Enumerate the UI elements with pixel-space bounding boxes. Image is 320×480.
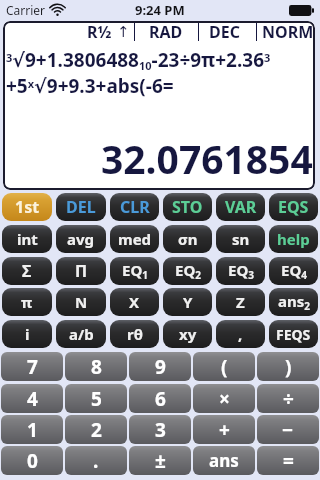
button[interactable]: N — [56, 288, 106, 316]
button[interactable]: 3 — [129, 415, 191, 444]
button[interactable]: xy — [163, 320, 212, 348]
staticText: 9:24 PM — [135, 1, 185, 19]
staticText: Y — [183, 292, 193, 312]
staticText: EQS — [278, 196, 309, 218]
button[interactable]: ± — [129, 446, 191, 475]
staticText: 8 — [91, 354, 102, 380]
staticText: DEL — [66, 196, 96, 218]
button[interactable]: 9 — [129, 352, 191, 381]
button[interactable]: ans2 — [269, 288, 318, 316]
button[interactable]: ans — [193, 446, 255, 475]
staticText: Σ — [22, 260, 32, 282]
staticText: 9 — [155, 354, 166, 380]
staticText: DEC — [209, 21, 240, 41]
staticText: 32.0761854 — [101, 132, 313, 185]
button[interactable]: ( — [193, 352, 255, 381]
staticText: EQ2 — [175, 260, 201, 282]
button[interactable]: × — [193, 384, 255, 413]
staticText: VAR — [225, 196, 257, 218]
button[interactable]: CLR — [110, 193, 159, 221]
button[interactable]: 2 — [65, 415, 127, 444]
button[interactable]: STO — [163, 193, 212, 221]
staticText: ± — [155, 448, 166, 474]
button[interactable]: 4 — [1, 384, 63, 413]
button[interactable]: rθ — [110, 320, 159, 348]
staticText: EQ3 — [228, 260, 254, 282]
staticText: , — [238, 324, 243, 344]
button[interactable]: help — [269, 225, 318, 253]
staticText: σn — [178, 229, 198, 249]
button[interactable]: 1 — [1, 415, 63, 444]
button[interactable]: EQ4 — [269, 257, 318, 285]
button[interactable]: FEQS — [269, 320, 318, 348]
staticText: 2 — [91, 417, 102, 443]
staticText: + — [219, 417, 230, 443]
staticText: 0 — [27, 448, 38, 474]
staticText: help — [277, 229, 310, 249]
button[interactable]: 5 — [65, 384, 127, 413]
staticText: avg — [67, 229, 95, 249]
staticText: NORM — [262, 21, 314, 41]
staticText: Carrier — [6, 2, 46, 18]
staticText: med — [118, 229, 152, 249]
staticText: X — [129, 292, 140, 312]
staticText: ans2 — [278, 291, 310, 313]
button[interactable]: + — [193, 415, 255, 444]
button[interactable]: 8 — [65, 352, 127, 381]
staticText: +5x√9+9.3+abs(-6= — [6, 73, 174, 99]
button[interactable]: EQ1 — [110, 257, 159, 285]
staticText: π — [21, 292, 33, 312]
button[interactable]: Z — [216, 288, 265, 316]
staticText: a/b — [69, 324, 94, 344]
staticText: 6 — [155, 386, 166, 412]
button[interactable]: , — [216, 320, 265, 348]
staticText: . — [93, 448, 99, 474]
staticText: 1 — [27, 417, 38, 443]
button[interactable]: EQ3 — [216, 257, 265, 285]
button[interactable]: VAR — [216, 193, 265, 221]
staticText: ans — [209, 449, 239, 472]
staticText: 4 — [27, 386, 38, 412]
button[interactable]: π — [2, 288, 52, 316]
button[interactable]: i — [2, 320, 52, 348]
staticText: i — [25, 324, 30, 344]
button[interactable]: 6 — [129, 384, 191, 413]
button[interactable]: med — [110, 225, 159, 253]
button[interactable]: 7 — [1, 352, 63, 381]
staticText: 3 — [155, 417, 166, 443]
button[interactable]: DEL — [56, 193, 106, 221]
button[interactable]: ) — [257, 352, 319, 381]
staticText: STO — [172, 196, 203, 218]
staticText: EQ1 — [122, 260, 148, 282]
staticText: EQ4 — [281, 260, 307, 282]
staticText: rθ — [127, 324, 143, 344]
button[interactable]: σn — [163, 225, 212, 253]
staticText: = — [283, 448, 294, 474]
button[interactable]: avg — [56, 225, 106, 253]
staticText: N — [75, 292, 88, 312]
staticText: × — [219, 386, 230, 412]
staticText: 7 — [27, 354, 38, 380]
staticText: CLR — [120, 196, 150, 218]
staticText: 5 — [91, 386, 102, 412]
staticText: int — [17, 229, 38, 249]
button[interactable]: EQS — [269, 193, 318, 221]
button[interactable]: int — [2, 225, 52, 253]
button[interactable]: X — [110, 288, 159, 316]
button[interactable]: . — [65, 446, 127, 475]
staticText: Π — [75, 260, 88, 282]
button[interactable]: 0 — [1, 446, 63, 475]
button[interactable]: sn — [216, 225, 265, 253]
button[interactable]: 1st — [2, 193, 52, 221]
button[interactable]: Σ — [2, 257, 52, 285]
staticText: ( — [221, 354, 228, 380]
button[interactable]: Y — [163, 288, 212, 316]
staticText: ) — [285, 354, 292, 380]
button[interactable]: a/b — [56, 320, 106, 348]
button[interactable]: ÷ — [257, 384, 319, 413]
staticText: sn — [232, 229, 250, 249]
button[interactable]: = — [257, 446, 319, 475]
button[interactable]: EQ2 — [163, 257, 212, 285]
button[interactable]: − — [257, 415, 319, 444]
button[interactable]: Π — [56, 257, 106, 285]
